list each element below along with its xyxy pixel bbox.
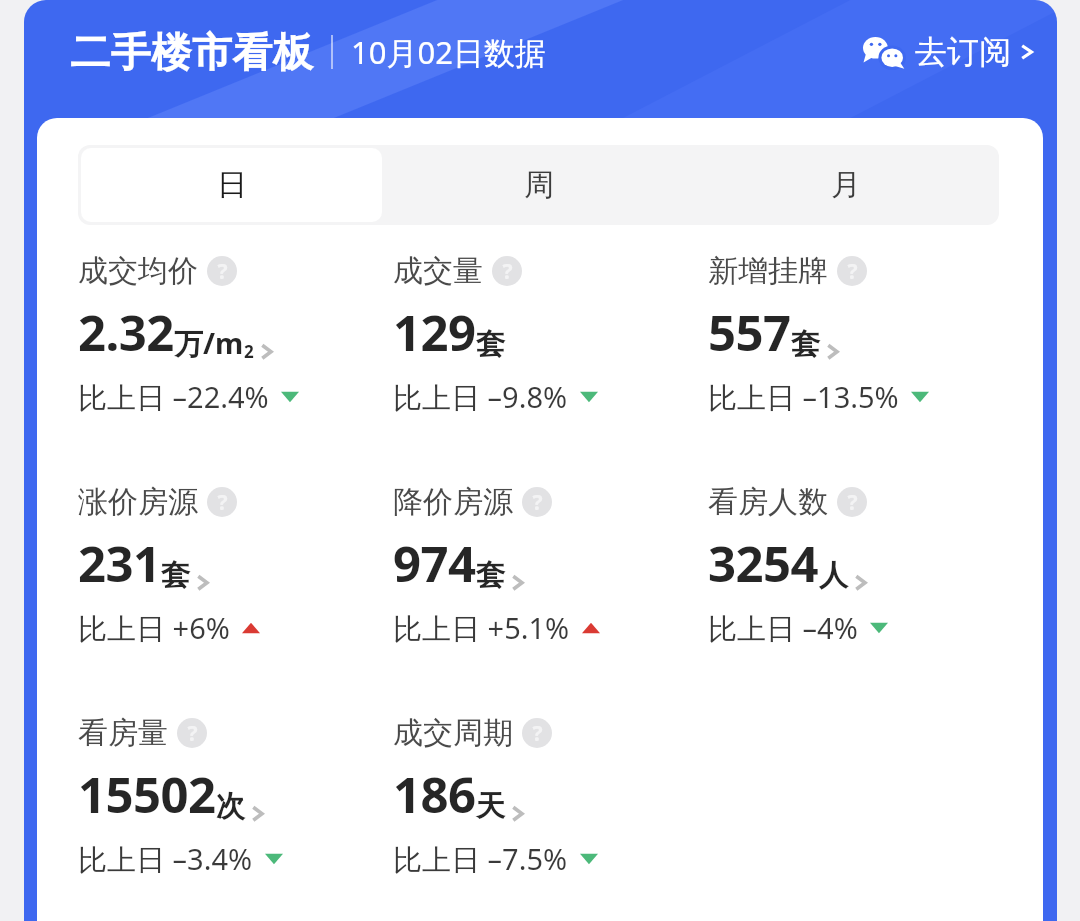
staticText: ? <box>217 257 228 286</box>
staticText: 10月02日数据 <box>351 31 546 73</box>
button[interactable]: 降价房源 <box>393 483 708 650</box>
staticText: 186 <box>393 761 476 828</box>
staticText: 二手楼市看板 <box>70 27 313 77</box>
staticText: 日 <box>217 166 247 204</box>
staticText: 去订阅 <box>915 32 1011 72</box>
staticText: 557 <box>708 299 791 366</box>
staticText: 套 <box>476 326 505 363</box>
staticText: ? <box>847 257 858 286</box>
button[interactable]: 帮助说明 成交周期 <box>522 718 552 748</box>
button[interactable]: 帮助说明 成交量 <box>492 256 522 286</box>
button[interactable]: 帮助说明 新增挂牌 <box>837 256 867 286</box>
staticText: 新增挂牌 <box>708 252 828 290</box>
staticText: 231 <box>78 530 161 597</box>
button[interactable]: 日 <box>81 148 382 222</box>
staticText: ? <box>502 257 513 286</box>
staticText: 人 <box>819 557 848 594</box>
staticText: ? <box>532 488 543 517</box>
staticText: 涨价房源 <box>78 483 198 521</box>
button[interactable]: 看房量 <box>78 714 393 881</box>
staticText: 15502 <box>78 761 216 828</box>
staticText: 比上日 –9.8% <box>393 377 568 417</box>
button[interactable]: 月 <box>695 148 996 222</box>
staticText: ? <box>217 488 228 517</box>
staticText: ? <box>532 719 543 748</box>
staticText: ? <box>847 488 858 517</box>
staticText: 月 <box>831 166 861 204</box>
staticText: 2 <box>244 340 254 363</box>
staticText: 比上日 +6% <box>78 608 230 648</box>
staticText: 套 <box>476 557 505 594</box>
staticText: 129 <box>393 299 476 366</box>
staticText: 比上日 –7.5% <box>393 839 568 879</box>
staticText: 比上日 +5.1% <box>393 608 570 648</box>
button[interactable]: 去订阅 <box>851 26 1057 78</box>
staticText: 2.32 <box>78 299 174 366</box>
staticText: 周 <box>524 166 554 204</box>
button[interactable]: 成交量 <box>393 252 708 419</box>
staticText: 看房量 <box>78 714 168 752</box>
button[interactable]: 看房人数 <box>708 483 1023 650</box>
staticText: 比上日 –13.5% <box>708 377 899 417</box>
staticText: 套 <box>161 557 190 594</box>
staticText: 降价房源 <box>393 483 513 521</box>
staticText: 比上日 –3.4% <box>78 839 253 879</box>
button[interactable]: 帮助说明 看房人数 <box>837 487 867 517</box>
staticText: 看房人数 <box>708 483 828 521</box>
staticText: 成交量 <box>393 252 483 290</box>
staticText: 次 <box>216 788 245 825</box>
staticText: 比上日 –22.4% <box>78 377 269 417</box>
button[interactable]: 成交均价 <box>78 252 393 419</box>
button[interactable]: 成交周期 <box>393 714 708 881</box>
staticText: 天 <box>476 788 505 825</box>
button[interactable]: 帮助说明 降价房源 <box>522 487 552 517</box>
staticText: 万/m <box>174 323 244 363</box>
staticText: 成交周期 <box>393 714 513 752</box>
staticText: 比上日 –4% <box>708 608 858 648</box>
staticText: 成交均价 <box>78 252 198 290</box>
button[interactable]: 新增挂牌 <box>708 252 1023 419</box>
staticText: 套 <box>791 326 820 363</box>
button[interactable]: 帮助说明 看房量 <box>177 718 207 748</box>
staticText: 3254 <box>708 530 819 597</box>
staticText: 974 <box>393 530 476 597</box>
button[interactable]: 周 <box>388 148 689 222</box>
button[interactable]: 帮助说明 成交均价 <box>207 256 237 286</box>
staticText: ? <box>187 719 198 748</box>
button[interactable]: 涨价房源 <box>78 483 393 650</box>
button[interactable]: 帮助说明 涨价房源 <box>207 487 237 517</box>
